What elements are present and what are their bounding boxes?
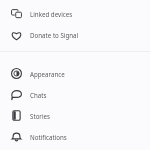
button[interactable]: Stories [0,105,150,126]
button[interactable]: Chats [0,84,150,105]
staticText: Donate to Signal [30,31,79,39]
button[interactable]: Donate to Signal [0,24,150,46]
button[interactable]: Appearance [0,63,150,84]
staticText: Chats [30,91,47,99]
staticText: Appearance [30,70,65,78]
button[interactable]: Notifications [0,126,150,147]
staticText: Stories [30,112,50,120]
button[interactable]: Linked devices [0,3,150,24]
staticText: Linked devices [30,10,73,18]
staticText: Notifications [30,133,67,141]
